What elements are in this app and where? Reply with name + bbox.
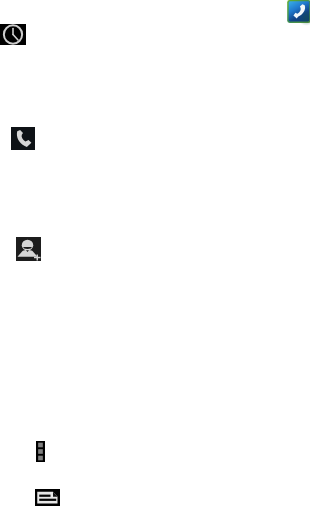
button[interactable]: Add contact (16, 237, 41, 261)
button[interactable]: Phone (286, 0, 310, 23)
button[interactable]: More options (36, 441, 45, 462)
button[interactable]: Recent calls (0, 24, 26, 45)
button[interactable]: Messages (35, 489, 60, 506)
button[interactable]: Dial (11, 127, 35, 150)
